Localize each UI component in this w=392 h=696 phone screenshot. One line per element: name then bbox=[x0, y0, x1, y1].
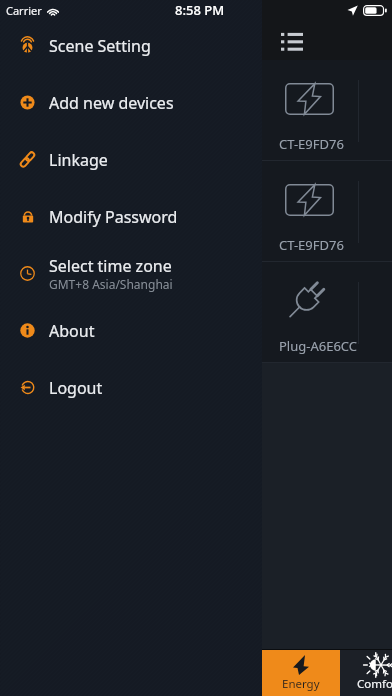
staticText: Linkage bbox=[49, 149, 108, 171]
staticText: 8:58 PM bbox=[175, 1, 225, 19]
staticText: About bbox=[49, 320, 95, 342]
button[interactable]: Linkage bbox=[0, 131, 262, 188]
staticText: Add new devices bbox=[49, 92, 174, 114]
button[interactable]: CT-E9FD76 bbox=[262, 60, 392, 161]
staticText: Modify Password bbox=[49, 206, 178, 228]
staticText: Logout bbox=[49, 377, 103, 399]
staticText: Select time zone bbox=[49, 255, 172, 277]
button[interactable]: Comfort bbox=[340, 649, 392, 696]
button[interactable]: Scene Setting bbox=[0, 17, 262, 74]
staticText: Carrier bbox=[6, 3, 42, 18]
button[interactable]: Modify Password bbox=[0, 188, 262, 245]
button[interactable]: Select time zone bbox=[0, 245, 262, 302]
staticText: Energy bbox=[282, 676, 320, 692]
button[interactable]: About bbox=[0, 302, 262, 359]
staticText: Comfort bbox=[357, 676, 392, 692]
button[interactable]: CT-E9FD76 bbox=[262, 161, 392, 262]
staticText: Plug-A6E6CC bbox=[279, 337, 358, 355]
button[interactable]: Menu bbox=[278, 27, 306, 55]
staticText: CT-E9FD76 bbox=[279, 236, 344, 254]
staticText: Scene Setting bbox=[49, 35, 151, 57]
button[interactable]: Energy bbox=[262, 649, 340, 696]
button[interactable]: Logout bbox=[0, 359, 262, 416]
staticText: GMT+8 Asia/Shanghai bbox=[49, 276, 173, 292]
staticText: CT-E9FD76 bbox=[279, 135, 344, 153]
button[interactable]: Plug-A6E6CC bbox=[262, 262, 392, 363]
button[interactable]: Add new devices bbox=[0, 74, 262, 131]
